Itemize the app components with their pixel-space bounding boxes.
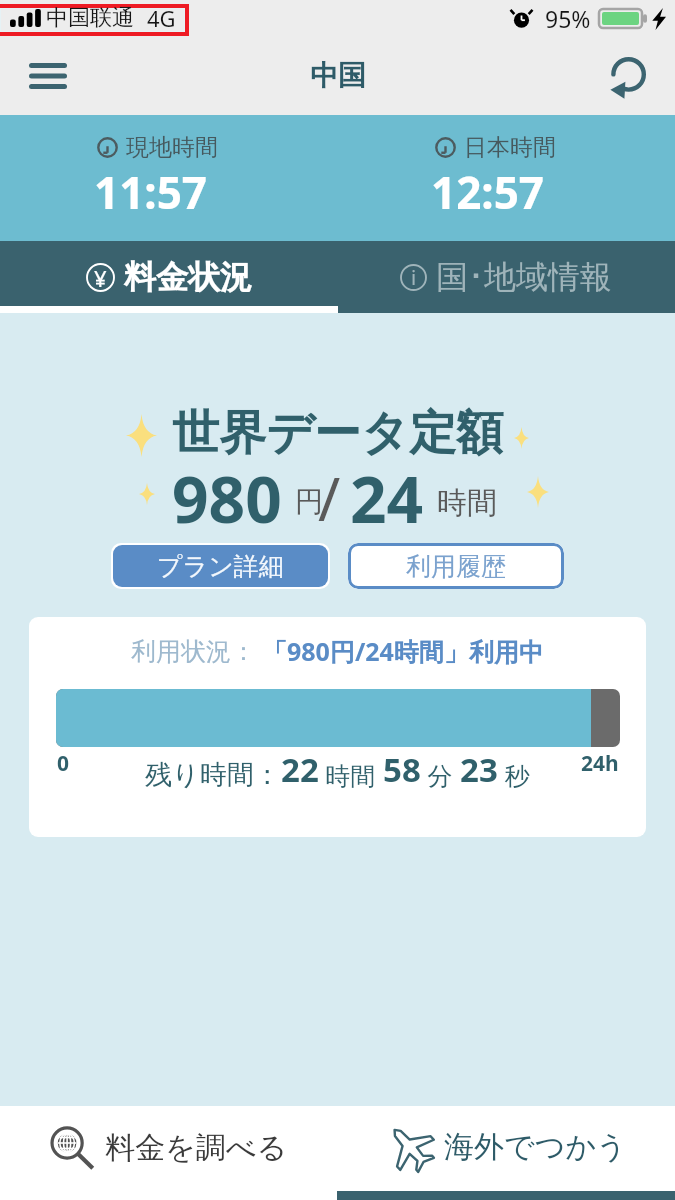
button[interactable]: Menu bbox=[18, 46, 78, 106]
staticText: 秒 bbox=[498, 758, 530, 792]
staticText: 0 bbox=[57, 749, 70, 778]
staticText: 95% bbox=[545, 3, 591, 34]
staticText: 4G bbox=[147, 3, 176, 33]
staticText: 58 bbox=[383, 747, 421, 792]
button[interactable]: プラン詳細 bbox=[113, 545, 328, 587]
staticText: ¥ bbox=[94, 263, 107, 292]
button[interactable]: Refresh bbox=[597, 46, 657, 106]
button[interactable]: ¥ bbox=[0, 241, 337, 313]
staticText: 時間 bbox=[437, 484, 497, 522]
staticText: 円 bbox=[295, 484, 323, 519]
staticText: 中国联通 bbox=[46, 4, 134, 32]
staticText: 「980円/24時間」利用中 bbox=[262, 634, 544, 668]
staticText: 残り時間： bbox=[145, 758, 281, 792]
staticText: 料金状況 bbox=[124, 257, 252, 297]
staticText: 11:57 bbox=[94, 162, 208, 222]
staticText: 利用履歴 bbox=[406, 551, 506, 582]
staticText: 時間 bbox=[319, 758, 383, 792]
staticText: 料金を調べる bbox=[105, 1129, 288, 1167]
staticText: 中国 bbox=[310, 58, 366, 93]
button[interactable]: 海外でつかう bbox=[337, 1106, 675, 1200]
staticText: 世界データ定額 bbox=[172, 404, 504, 463]
staticText: 23 bbox=[460, 747, 498, 792]
staticText: 海外でつかう bbox=[444, 1128, 627, 1166]
staticText: 24 bbox=[350, 455, 424, 542]
staticText: 利用状況： bbox=[131, 636, 256, 667]
button[interactable]: 利用履歴 bbox=[348, 543, 564, 589]
staticText: 24h bbox=[581, 749, 619, 778]
staticText: プラン詳細 bbox=[157, 551, 284, 582]
staticText: 分 bbox=[421, 758, 460, 792]
staticText: 980 bbox=[172, 455, 282, 542]
staticText: 日本時間 bbox=[464, 133, 556, 162]
button[interactable]: 料金を調べる bbox=[0, 1106, 337, 1200]
staticText: 国･地域情報 bbox=[436, 257, 612, 297]
staticText: 22 bbox=[281, 747, 319, 792]
staticText: 現地時間 bbox=[126, 133, 218, 162]
staticText: 12:57 bbox=[431, 162, 545, 222]
staticText: / bbox=[318, 457, 341, 539]
staticText: i bbox=[411, 264, 417, 291]
button[interactable]: i bbox=[337, 241, 675, 313]
